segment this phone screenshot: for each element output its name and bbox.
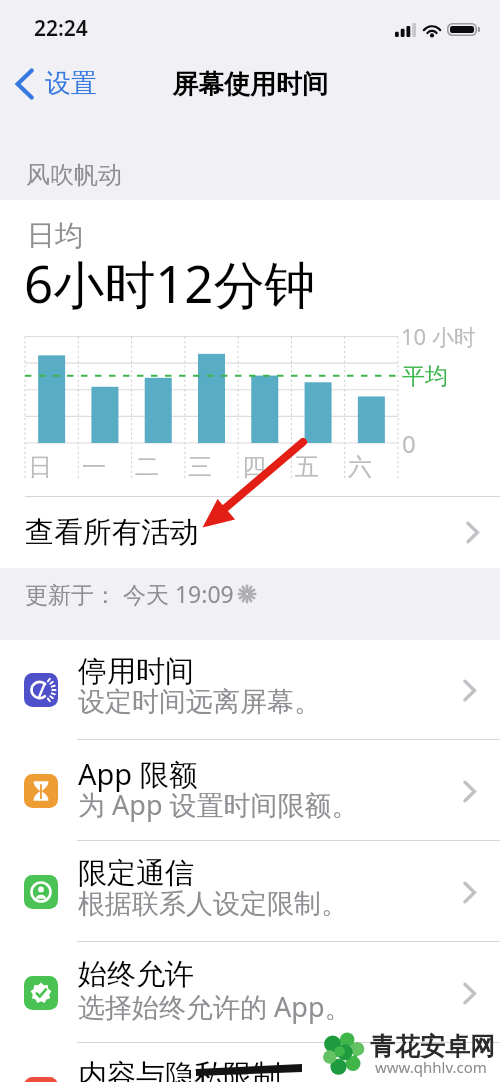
button[interactable]: 始终允许: [0, 943, 500, 1044]
staticText: www.qhhlv.com: [375, 1057, 487, 1077]
staticText: 为 App 设置时间限额。: [78, 786, 359, 823]
staticText: App 限额: [78, 754, 198, 794]
staticText: 设置: [45, 67, 97, 100]
staticText: 风吹帆动: [26, 160, 122, 190]
staticText: 22:24: [34, 14, 88, 43]
staticText: 选择始终允许的 App。: [78, 988, 352, 1025]
staticText: 10 小时: [401, 321, 476, 351]
staticText: 三: [188, 452, 212, 482]
staticText: 设定时间远离屏幕。: [78, 685, 321, 719]
staticText: 二: [135, 452, 159, 482]
button[interactable]: App 限额: [0, 741, 500, 842]
staticText: 0: [402, 427, 416, 460]
staticText: 查看所有活动: [25, 514, 199, 551]
staticText: 五: [295, 452, 319, 482]
staticText: 屏幕使用时间: [172, 68, 328, 101]
button[interactable]: 停用时间: [0, 640, 500, 741]
staticText: 日: [28, 452, 52, 482]
staticText: 青花安卓网: [370, 1031, 495, 1062]
staticText: 6小时12分钟: [24, 248, 316, 318]
button[interactable]: 查看所有活动: [0, 497, 500, 568]
staticText: 一: [82, 452, 106, 482]
staticText: 六: [348, 452, 372, 482]
button[interactable]: 设置: [0, 61, 111, 106]
staticText: 根据联系人设定限制。: [78, 887, 348, 921]
staticText: 日均: [27, 218, 83, 253]
staticText: 始终允许: [78, 956, 194, 993]
button[interactable]: 内容与隐私限制: [0, 1044, 500, 1082]
staticText: 限定通信: [78, 855, 194, 892]
staticText: 四: [242, 452, 266, 482]
staticText: 停用时间: [78, 653, 194, 690]
staticText: 平均: [402, 362, 448, 391]
button[interactable]: 限定通信: [0, 842, 500, 943]
staticText: 更新于： 今天 19:09: [25, 578, 234, 609]
staticText: 内容与隐私限制: [78, 1057, 281, 1082]
